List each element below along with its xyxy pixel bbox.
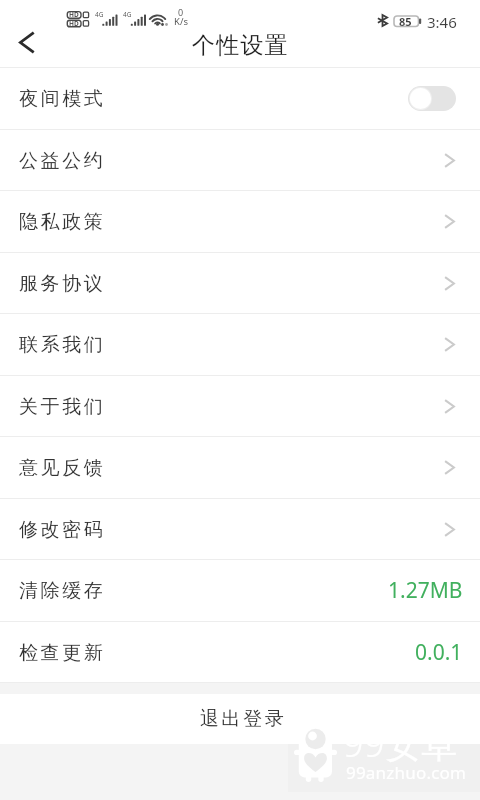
staticText: 公益公约 [19, 149, 106, 173]
staticText: 3:46 [427, 12, 457, 32]
staticText: 服务协议 [19, 272, 106, 296]
staticText: 99安卓 [343, 719, 458, 768]
button[interactable]: 公益公约 [0, 129, 480, 191]
staticText: 联系我们 [19, 333, 106, 357]
staticText: 关于我们 [19, 395, 106, 419]
button[interactable]: 关于我们 [0, 375, 480, 437]
button[interactable]: 意见反馈 [0, 436, 480, 498]
staticText: 夜间模式 [19, 87, 106, 111]
staticText: 退出登录 [200, 707, 287, 731]
button[interactable]: 退出登录 [0, 694, 480, 744]
staticText: K/s [174, 15, 188, 28]
staticText: 85 [399, 14, 412, 29]
staticText: 隐私政策 [19, 210, 106, 234]
button[interactable]: 检查更新 [0, 621, 480, 683]
button[interactable]: 服务协议 [0, 252, 480, 314]
staticText: 0.0.1 [415, 638, 463, 667]
staticText: 检查更新 [19, 641, 106, 665]
button[interactable]: Back [0, 30, 54, 67]
staticText: 0 [178, 6, 184, 18]
button[interactable]: Night mode [408, 86, 456, 111]
button[interactable]: 联系我们 [0, 313, 480, 375]
staticText: 意见反馈 [19, 456, 106, 480]
staticText: HD [69, 10, 79, 19]
staticText: 个性设置 [192, 31, 289, 60]
staticText: 4G [123, 10, 132, 19]
staticText: 1.27MB [388, 576, 463, 605]
button[interactable]: 清除缓存 [0, 559, 480, 621]
staticText: 修改密码 [19, 518, 106, 542]
button[interactable]: 修改密码 [0, 498, 480, 560]
staticText: HD [69, 19, 79, 28]
staticText: 99anzhuo.com [346, 761, 467, 784]
staticText: 4G [95, 10, 104, 19]
staticText: 清除缓存 [19, 579, 106, 603]
button[interactable]: 夜间模式 [0, 67, 480, 129]
button[interactable]: 隐私政策 [0, 190, 480, 252]
